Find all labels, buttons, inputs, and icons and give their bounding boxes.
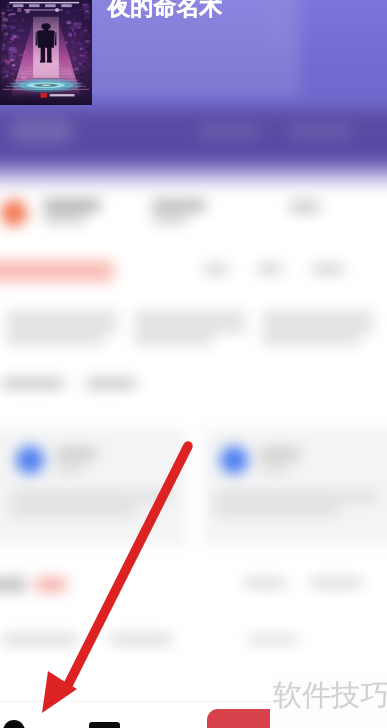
staticText: 夜的命名术 [107,0,222,22]
button[interactable]: Search [8,118,74,144]
button[interactable]: Continue reading [207,709,372,728]
staticText: 软件技巧 [273,677,387,714]
button[interactable]: Bookshelf [89,722,120,728]
button[interactable]: Home [3,720,25,728]
